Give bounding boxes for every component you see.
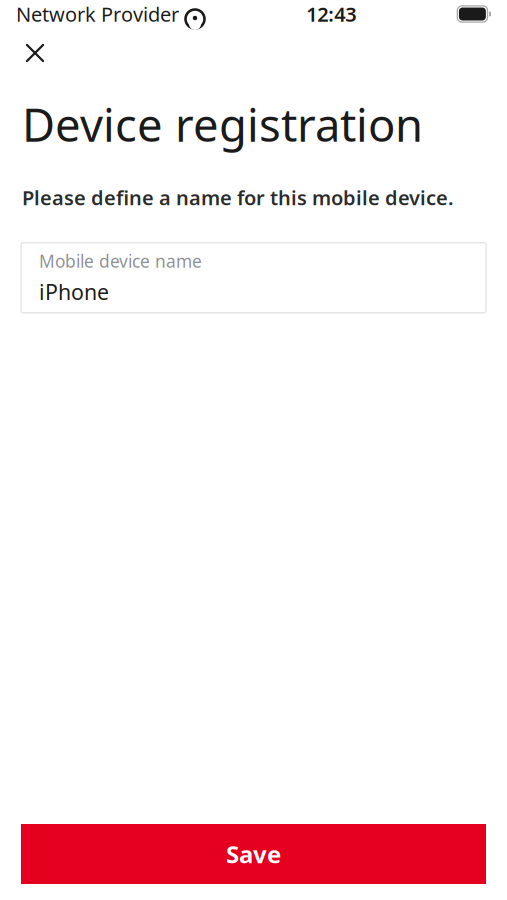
staticText: Save — [226, 838, 281, 870]
staticText: Mobile device name — [39, 250, 202, 273]
button[interactable]: Mobile device name — [21, 243, 486, 313]
button[interactable]: Close — [12, 30, 58, 76]
staticText: Please define a name for this mobile dev… — [22, 184, 454, 211]
staticText: Device registration — [22, 94, 423, 154]
staticText: Network Provider — [16, 1, 179, 27]
staticText: iPhone — [39, 278, 109, 306]
button[interactable]: Save — [21, 824, 486, 884]
staticText: 12:43 — [306, 1, 356, 27]
